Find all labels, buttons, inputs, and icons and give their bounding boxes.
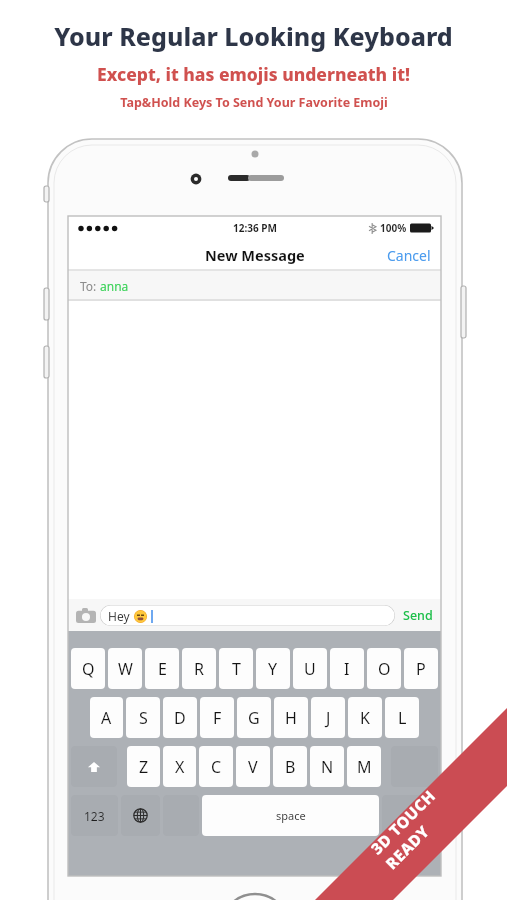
button[interactable]: O <box>367 648 401 689</box>
staticText: K <box>360 707 370 729</box>
staticText: X <box>175 756 185 778</box>
staticText: Cancel <box>387 246 431 265</box>
staticText: Except, it has emojis underneath it! <box>97 62 410 86</box>
staticText: New Message <box>205 245 305 265</box>
staticText: D <box>174 707 186 729</box>
staticText: L <box>398 707 407 729</box>
staticText: To: <box>80 278 100 294</box>
button[interactable]: Camera <box>68 608 100 623</box>
staticText: space <box>276 808 306 823</box>
button[interactable]: 123 <box>71 795 118 836</box>
button[interactable]: V <box>236 746 270 787</box>
button[interactable]: Cancel <box>377 241 441 270</box>
staticText: 100% <box>380 221 407 235</box>
button[interactable]: F <box>200 697 234 738</box>
staticText: I <box>344 658 350 680</box>
staticText: 3D TOUCH READY <box>366 759 480 873</box>
staticText: A <box>101 707 112 729</box>
button[interactable]: Hey <box>100 605 395 626</box>
button[interactable]: space <box>202 795 379 836</box>
button[interactable]: Switch keyboard <box>121 795 160 836</box>
button[interactable]: Shift <box>71 746 117 787</box>
button[interactable]: Return <box>382 795 438 836</box>
staticText: R <box>194 658 204 680</box>
button[interactable]: T <box>219 648 253 689</box>
button[interactable]: P <box>404 648 438 689</box>
button[interactable]: U <box>293 648 327 689</box>
staticText: B <box>285 756 296 778</box>
button[interactable]: X <box>163 746 196 787</box>
button[interactable]: D <box>163 697 197 738</box>
staticText: Y <box>268 658 278 680</box>
button[interactable]: Y <box>256 648 290 689</box>
button[interactable]: Q <box>71 648 105 689</box>
staticText: Hey <box>108 608 130 624</box>
button[interactable]: B <box>273 746 307 787</box>
staticText: P <box>416 658 426 680</box>
button[interactable]: H <box>274 697 308 738</box>
staticText: M <box>357 756 372 778</box>
staticText: 123 <box>84 808 105 824</box>
staticText: F <box>213 707 222 729</box>
staticText: U <box>304 658 316 680</box>
staticText: N <box>321 756 334 778</box>
button[interactable]: Backspace <box>391 746 438 787</box>
button[interactable]: L <box>385 697 419 738</box>
button[interactable]: G <box>237 697 271 738</box>
staticText: S <box>139 707 148 729</box>
button[interactable]: W <box>108 648 142 689</box>
staticText: Send <box>403 607 433 624</box>
button[interactable]: Z <box>127 746 160 787</box>
button[interactable]: N <box>310 746 344 787</box>
button[interactable]: S <box>126 697 160 738</box>
button[interactable]: J <box>311 697 345 738</box>
staticText: C <box>211 756 222 778</box>
staticText: W <box>118 658 133 680</box>
staticText: T <box>232 658 241 680</box>
staticText: 12:36 PM <box>233 221 277 235</box>
staticText: anna <box>100 278 129 294</box>
staticText: V <box>248 756 258 778</box>
staticText: Q <box>82 658 95 680</box>
staticText: E <box>158 658 167 680</box>
button[interactable]: K <box>348 697 382 738</box>
staticText: Your Regular Looking Keyboard <box>54 19 453 53</box>
staticText: J <box>326 707 331 729</box>
button[interactable]: A <box>90 697 123 738</box>
staticText: Z <box>139 756 149 778</box>
staticText: O <box>378 658 391 680</box>
button[interactable]: C <box>199 746 233 787</box>
button[interactable]: M <box>347 746 381 787</box>
button[interactable]: R <box>182 648 216 689</box>
staticText: G <box>248 707 260 729</box>
button[interactable]: E <box>145 648 179 689</box>
staticText: H <box>285 707 297 729</box>
button[interactable]: Send <box>395 602 441 629</box>
staticText: Tap&Hold Keys To Send Your Favorite Emoj… <box>120 94 388 111</box>
button[interactable]: I <box>330 648 364 689</box>
